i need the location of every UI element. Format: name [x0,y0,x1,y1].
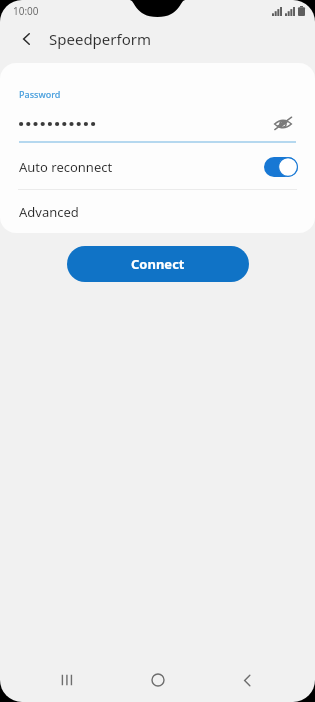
button[interactable]: Back [14,26,40,52]
staticText: 10:00 [13,4,39,18]
button[interactable]: Advanced [0,190,315,233]
staticText: Password [19,88,61,100]
staticText: Advanced [19,203,79,221]
button[interactable]: Recent apps [46,658,90,702]
button[interactable]: Show password [270,111,296,137]
button[interactable]: Connect [67,246,249,282]
staticText: Auto reconnect [19,158,264,176]
staticText: Connect [131,255,185,273]
button[interactable]: Back [225,658,269,702]
staticText: Speedperform [49,29,151,49]
button[interactable]: Password [0,63,315,145]
button[interactable]: Home [136,658,180,702]
button[interactable]: Auto reconnect [0,145,315,189]
button[interactable]: Auto reconnect toggle [264,157,298,177]
